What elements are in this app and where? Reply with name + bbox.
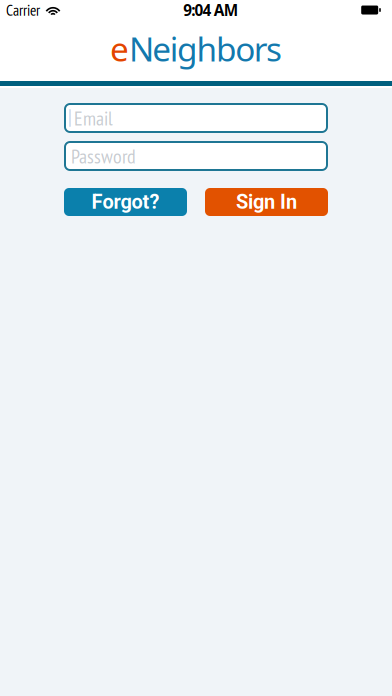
staticText: Password (71, 143, 136, 169)
staticText: Neighbors (129, 26, 282, 71)
button[interactable]: Forgot? (64, 188, 187, 216)
staticText: Email (74, 105, 113, 131)
staticText: Carrier (6, 0, 40, 20)
staticText: Sign In (236, 190, 297, 214)
staticText: 9:04 AM (183, 0, 238, 20)
button[interactable]: Sign In (205, 188, 328, 216)
staticText: e (110, 26, 129, 71)
staticText: Forgot? (91, 190, 159, 214)
